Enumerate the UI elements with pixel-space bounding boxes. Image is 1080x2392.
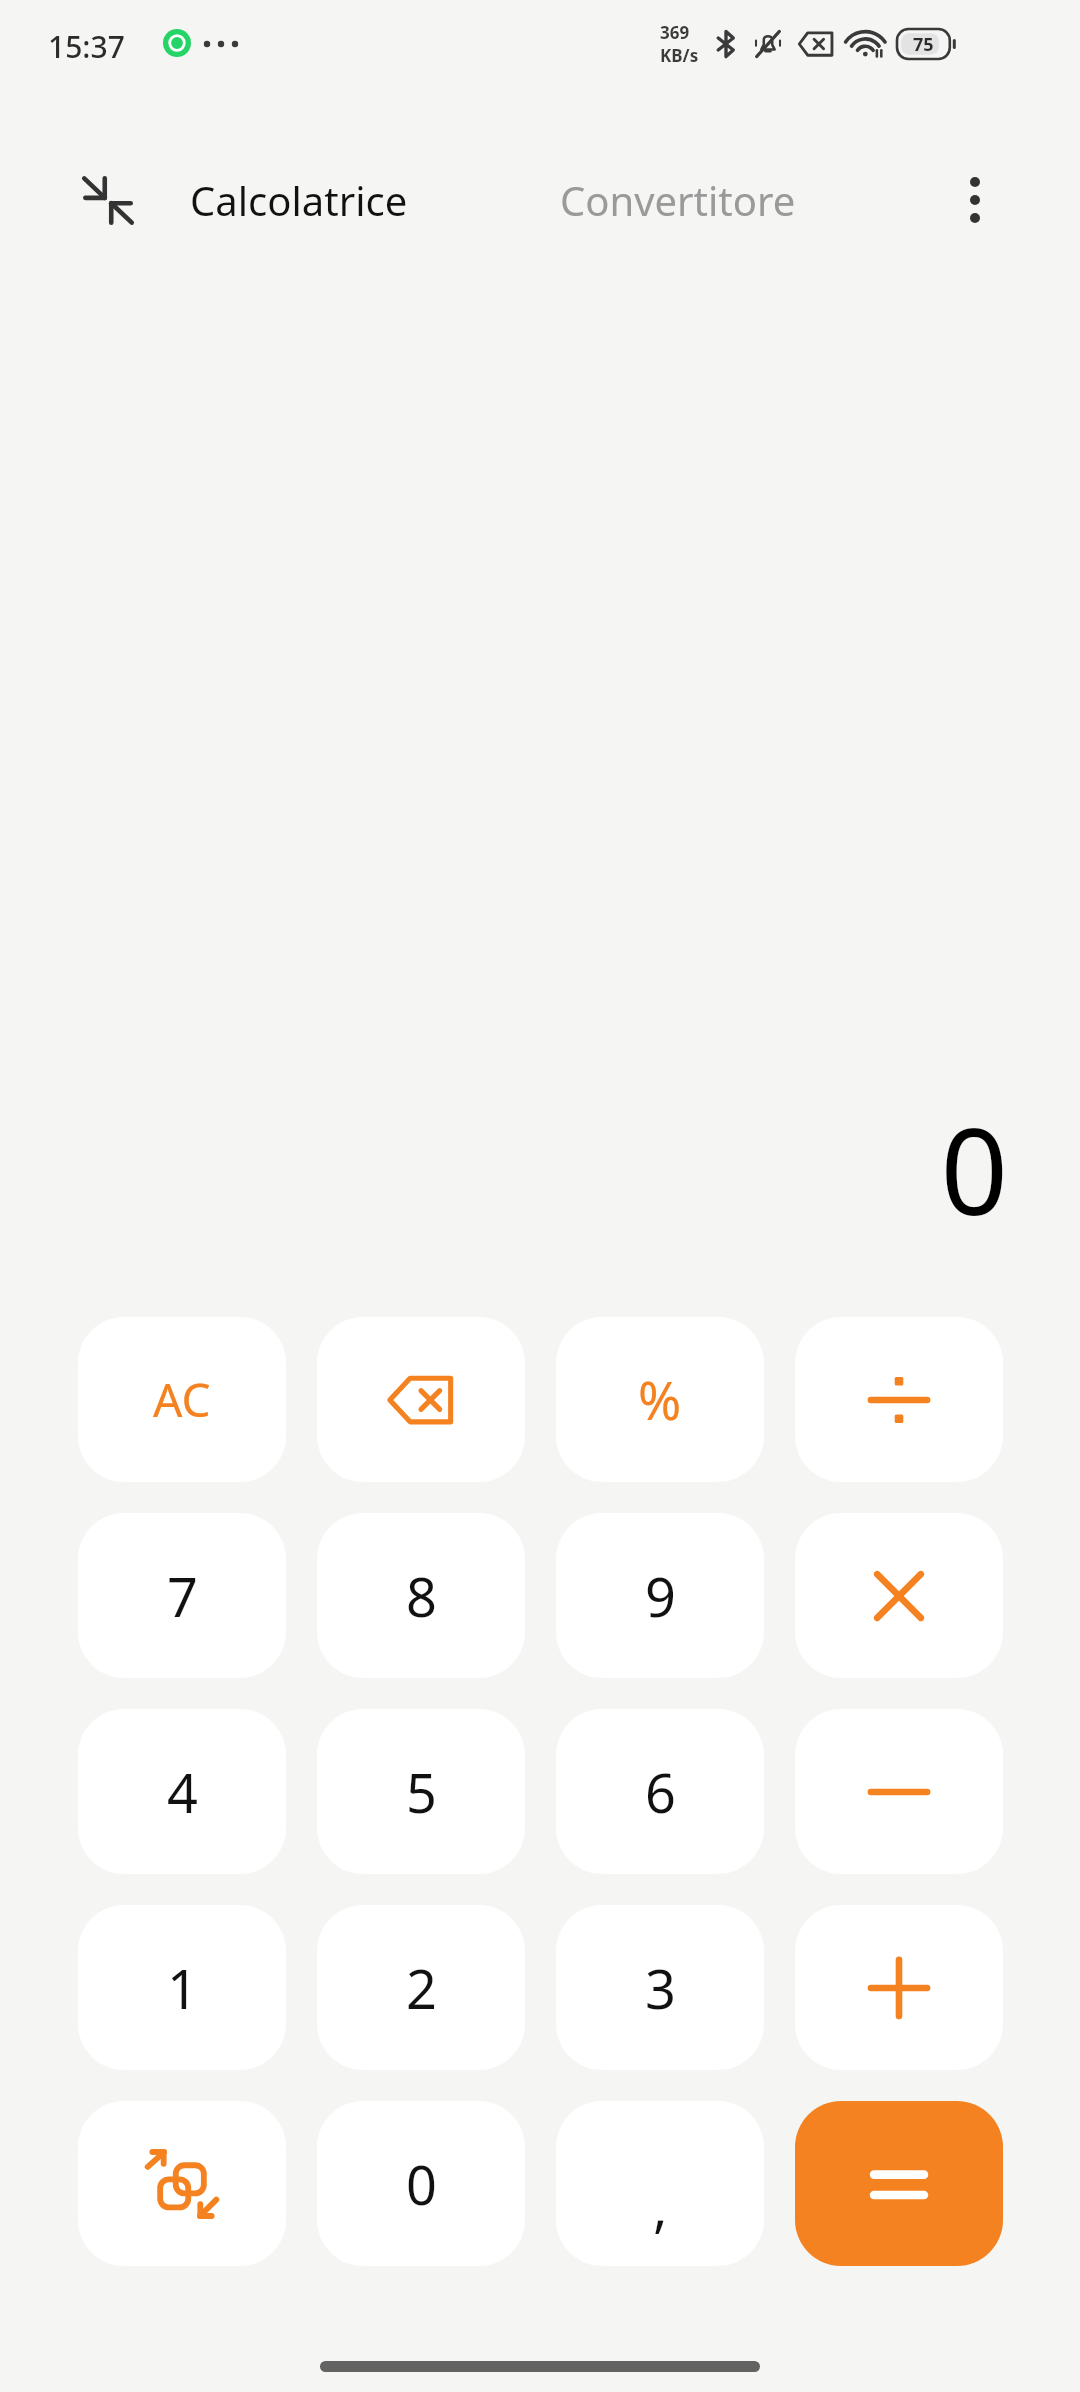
button[interactable]: 9 [556,1513,764,1678]
staticText: 1 [167,1951,198,2025]
button[interactable]: 1 [78,1905,286,2070]
staticText: , [653,2169,668,2243]
button[interactable]: 4 [78,1709,286,1874]
button[interactable]: Uguale [795,2101,1003,2266]
staticText: 4 [167,1755,198,1829]
staticText: 5 [406,1755,437,1829]
staticText: 6 [645,1755,676,1829]
staticText: 0 [406,2147,437,2221]
button[interactable]: Altre opzioni [930,160,1020,240]
staticText: 7 [167,1559,198,1633]
button[interactable]: , [556,2101,764,2266]
staticText: 9 [645,1559,676,1633]
button[interactable]: Cancella [317,1317,525,1482]
button[interactable]: Moltiplica [795,1513,1003,1678]
staticText: 3 [645,1951,676,2025]
button[interactable]: Dividi [795,1317,1003,1482]
button[interactable]: 0 [317,2101,525,2266]
button[interactable]: Sottrai [795,1709,1003,1874]
button[interactable]: 6 [556,1709,764,1874]
staticText: 2 [406,1951,437,2025]
button[interactable]: Modalità scientifica [78,2101,286,2266]
button[interactable]: 8 [317,1513,525,1678]
button[interactable]: Convertitore [560,158,796,242]
button[interactable]: Calcolatrice [190,158,408,242]
staticText: 369 [660,21,690,44]
staticText: AC [153,1368,211,1431]
staticText: Convertitore [560,173,796,227]
staticText: 8 [406,1559,437,1633]
button[interactable]: 3 [556,1905,764,2070]
staticText: % [638,1364,682,1435]
staticText: Calcolatrice [190,173,408,227]
button[interactable]: 5 [317,1709,525,1874]
button[interactable]: % [556,1317,764,1482]
button[interactable]: 7 [78,1513,286,1678]
button[interactable]: Somma [795,1905,1003,2070]
staticText: KB/s [660,44,699,67]
button[interactable]: 2 [317,1905,525,2070]
staticText: 0 [940,1089,1008,1250]
staticText: 75 [913,32,934,57]
button[interactable]: AC [78,1317,286,1482]
staticText: 15:37 [48,26,125,67]
button[interactable]: Riduci [58,166,158,234]
